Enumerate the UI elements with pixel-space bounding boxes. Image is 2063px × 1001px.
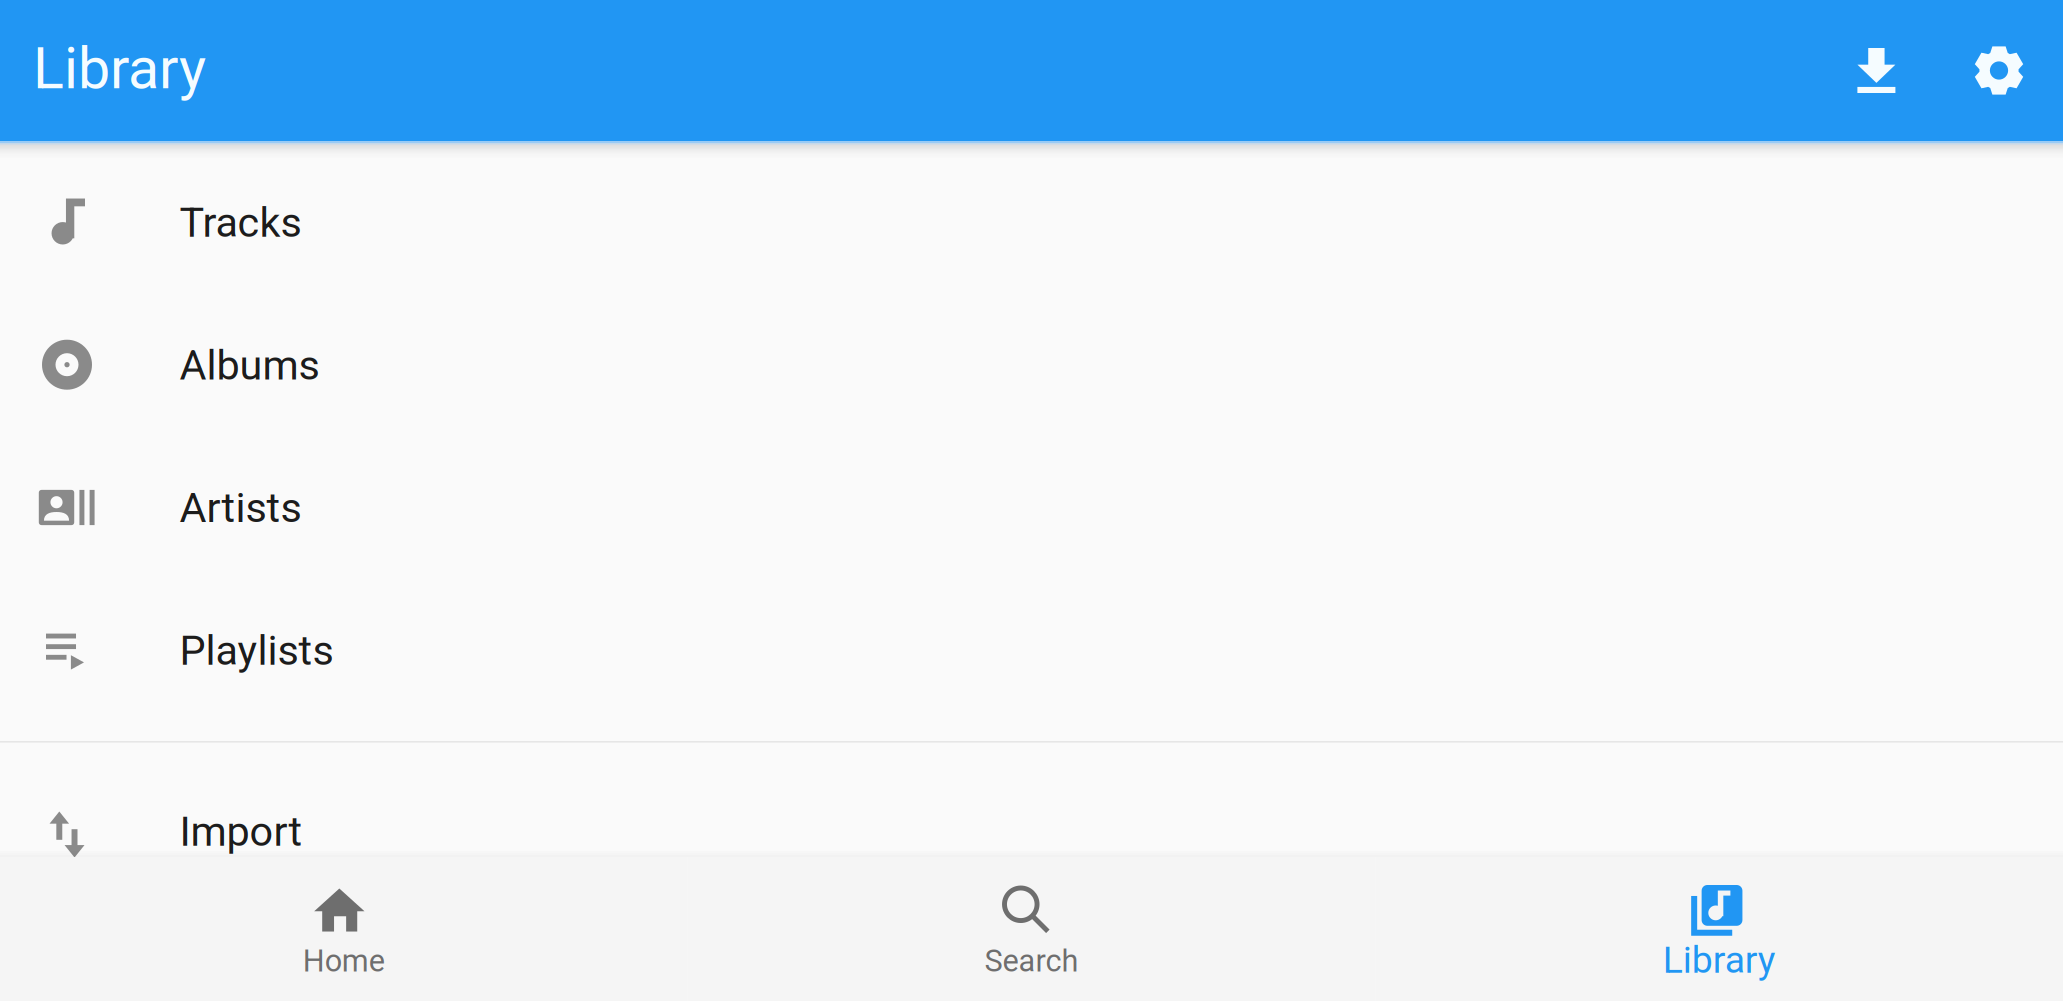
button[interactable]: Search — [688, 857, 1375, 1001]
button[interactable]: Playlists — [0, 579, 2063, 721]
staticText: Artists — [179, 484, 301, 532]
staticText: Import — [179, 807, 302, 856]
button[interactable]: Download — [1824, 0, 1928, 141]
button[interactable]: Albums — [0, 293, 2063, 436]
staticText: Library — [1663, 938, 1776, 982]
button[interactable]: Tracks — [0, 150, 2063, 293]
button[interactable]: Library — [1375, 857, 2063, 1001]
button[interactable]: Home — [0, 857, 688, 1001]
staticText: Home — [303, 943, 385, 979]
staticText: Library — [33, 35, 206, 102]
button[interactable]: Artists — [0, 436, 2063, 579]
staticText: Playlists — [179, 626, 333, 675]
staticText: Albums — [179, 341, 319, 389]
staticText: Search — [984, 943, 1078, 979]
button[interactable]: Settings — [1947, 0, 2051, 141]
staticText: Tracks — [179, 198, 301, 247]
button[interactable]: Import — [0, 759, 2063, 902]
